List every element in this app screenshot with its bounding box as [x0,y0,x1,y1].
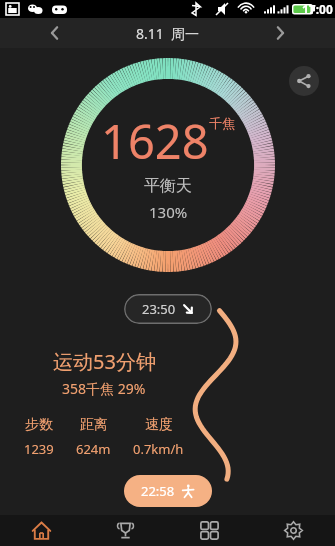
staticText: 距离 [80,416,108,434]
staticText: 358千焦 29% [62,379,146,398]
staticText: 624m [76,440,111,458]
staticText: 22:58 [141,482,175,500]
staticText: 运动53分钟 [53,348,156,375]
staticText: 0.7km/h [133,440,184,458]
staticText: 23:50 [142,300,176,318]
button[interactable]: 22:58 [124,475,212,507]
button[interactable]: Achievements [83,515,167,546]
button[interactable]: Share [289,66,319,96]
staticText: 步数 [25,416,53,434]
button[interactable]: Next day [265,18,295,48]
staticText: 1239 [24,440,54,458]
button[interactable]: 23:50 [124,294,212,324]
staticText: 1628 [101,109,209,173]
staticText: 17:00 [302,1,333,17]
staticText: 千焦 [209,115,235,131]
staticText: 8.11 周一 [136,24,200,43]
staticText: 平衡天 [144,176,192,196]
staticText: 130% [149,202,188,222]
button[interactable]: Apps [167,515,251,546]
button[interactable]: Settings [251,515,335,546]
staticText: 速度 [145,416,173,434]
button[interactable]: Previous day [40,18,70,48]
button[interactable]: Home [0,515,83,546]
